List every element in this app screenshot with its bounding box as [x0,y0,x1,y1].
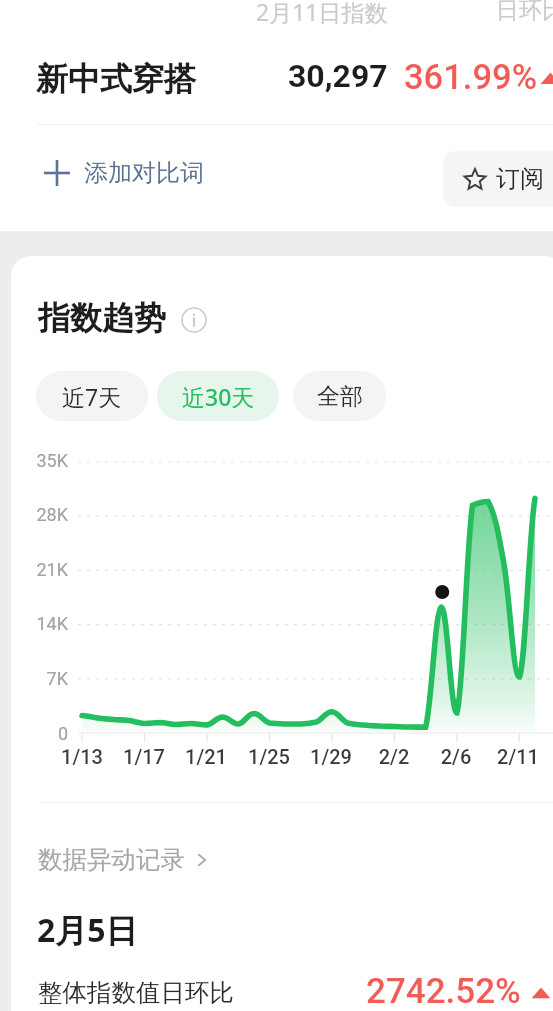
staticText: 1/17 [104,745,184,768]
staticText: 2/6 [416,745,496,768]
button[interactable]: 数据异动记录 [30,836,219,883]
staticText: 14K [0,613,68,634]
staticText: 361.99% [404,57,538,97]
staticText: 35K [0,450,68,471]
staticText: 近30天 [182,381,255,412]
staticText: 2/2 [354,745,434,768]
staticText: 2742.52% [366,971,521,1011]
other: Info [181,307,207,333]
button[interactable]: 近30天 [157,371,279,421]
button[interactable]: 近7天 [36,371,148,421]
staticText: 订阅 [496,164,544,194]
staticText: 整体指数值日环比 [38,977,234,1008]
staticText: 30,297 [288,57,388,95]
staticText: 1/13 [42,745,122,768]
staticText: 7K [0,668,68,689]
staticText: 21K [0,559,68,580]
staticText: 2月5日 [37,908,138,952]
staticText: 1/29 [291,745,371,768]
button[interactable]: 订阅 [443,151,553,207]
staticText: 1/25 [229,745,309,768]
staticText: 0 [0,723,68,744]
staticText: 新中式穿搭 [36,59,196,99]
staticText: 添加对比词 [84,158,204,188]
button[interactable]: 添加对比词 [36,148,212,198]
staticText: 指数趋势 [38,298,166,338]
staticText: 全部 [317,382,363,411]
staticText: 2月11日指数 [256,0,388,27]
staticText: 日环比 [496,0,553,25]
button[interactable]: 全部 [293,371,386,421]
staticText: 数据异动记录 [38,844,185,875]
staticText: 2/11 [478,745,553,768]
staticText: 近7天 [62,381,122,412]
staticText: 1/21 [166,745,246,768]
staticText: 28K [0,504,68,525]
